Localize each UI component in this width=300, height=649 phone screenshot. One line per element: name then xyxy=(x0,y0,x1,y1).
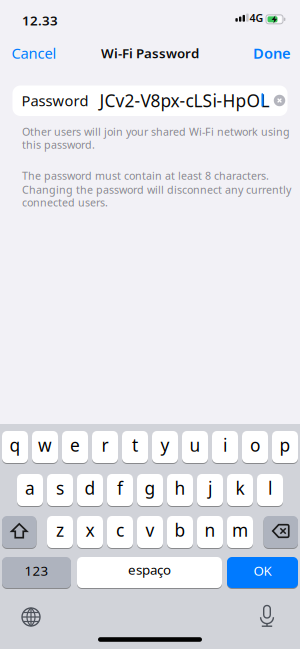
staticText: OK xyxy=(253,562,271,579)
staticText: l xyxy=(268,476,272,499)
button[interactable]: m xyxy=(227,515,253,549)
staticText: 12.33 xyxy=(22,11,58,29)
button[interactable]: j xyxy=(197,473,223,507)
staticText: h xyxy=(174,476,185,499)
button[interactable]: z xyxy=(47,515,73,549)
button[interactable]: w xyxy=(32,430,58,464)
button[interactable]: y xyxy=(152,430,178,464)
staticText: JCv2-V8px-cLSi-HpOL xyxy=(99,89,269,112)
button[interactable]: h xyxy=(167,473,193,507)
button[interactable]: k xyxy=(227,473,253,507)
button[interactable]: a xyxy=(17,473,43,507)
button[interactable]: OK xyxy=(227,556,298,589)
staticText: r xyxy=(101,433,108,456)
staticText: g xyxy=(144,476,155,499)
staticText: Password xyxy=(21,91,88,110)
staticText: Wi-Fi Password xyxy=(101,44,199,62)
button[interactable]: b xyxy=(167,515,193,549)
button[interactable]: v xyxy=(137,515,163,549)
button[interactable]: Dictation xyxy=(249,598,285,634)
staticText: y xyxy=(160,433,169,456)
staticText: espaço xyxy=(128,561,171,578)
button[interactable]: g xyxy=(137,473,163,507)
staticText: x xyxy=(85,518,94,541)
button[interactable]: Next keyboard xyxy=(13,599,49,635)
staticText: w xyxy=(38,433,52,456)
staticText: 4G xyxy=(249,11,263,25)
staticText: this password. xyxy=(22,138,95,152)
staticText: c xyxy=(116,518,124,541)
button[interactable]: d xyxy=(77,473,103,507)
button[interactable]: u xyxy=(182,430,208,464)
button[interactable]: p xyxy=(272,430,298,464)
staticText: Changing the password will disconnect an… xyxy=(22,182,291,197)
button[interactable]: e xyxy=(62,430,88,464)
staticText: a xyxy=(25,476,35,499)
staticText: b xyxy=(174,518,185,541)
button[interactable]: s xyxy=(47,473,73,507)
staticText: v xyxy=(145,518,154,541)
button[interactable]: i xyxy=(212,430,238,464)
staticText: s xyxy=(56,476,64,499)
staticText: Other users will join your shared Wi-Fi … xyxy=(22,124,290,139)
staticText: The password must contain at least 8 cha… xyxy=(22,168,269,183)
staticText: d xyxy=(84,476,95,499)
staticText: u xyxy=(189,433,200,456)
staticText: o xyxy=(250,433,260,456)
button[interactable]: r xyxy=(92,430,118,464)
staticText: n xyxy=(204,518,215,541)
staticText: q xyxy=(9,433,20,456)
staticText: Done xyxy=(253,43,291,63)
button[interactable]: o xyxy=(242,430,268,464)
button[interactable]: x xyxy=(77,515,103,549)
button[interactable]: q xyxy=(2,430,28,464)
button[interactable]: espaço xyxy=(77,556,222,589)
button[interactable]: l xyxy=(257,473,283,507)
button[interactable]: Done xyxy=(253,43,291,63)
staticText: z xyxy=(56,518,64,541)
button[interactable]: 123 xyxy=(2,556,71,589)
button[interactable]: Password text field xyxy=(12,85,287,116)
staticText: f xyxy=(117,476,123,499)
staticText: j xyxy=(208,476,212,499)
button[interactable]: Clear text xyxy=(274,95,285,106)
button[interactable]: c xyxy=(107,515,133,549)
staticText: connected users. xyxy=(22,195,108,209)
staticText: e xyxy=(70,433,80,456)
button[interactable]: t xyxy=(122,430,148,464)
staticText: p xyxy=(279,433,290,456)
staticText: k xyxy=(235,476,244,499)
button[interactable]: Cancel xyxy=(11,43,56,63)
staticText: m xyxy=(232,518,248,541)
button[interactable]: n xyxy=(197,515,223,549)
button[interactable]: Shift xyxy=(2,515,36,549)
staticText: 123 xyxy=(24,562,48,579)
staticText: t xyxy=(132,433,138,456)
button[interactable]: f xyxy=(107,473,133,507)
staticText: Cancel xyxy=(11,43,56,63)
staticText: i xyxy=(223,433,227,456)
button[interactable]: Delete xyxy=(263,515,298,549)
